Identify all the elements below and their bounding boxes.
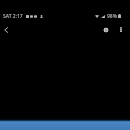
staticText: SAT 2:17 [3,13,23,20]
button[interactable]: Back [0,23,12,36]
button[interactable]: More options [114,23,127,36]
staticText: 98% [107,13,117,20]
button[interactable]: Settings [99,23,112,36]
